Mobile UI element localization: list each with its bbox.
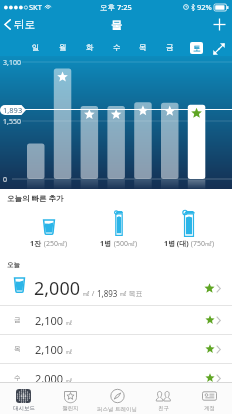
staticText: 친구	[158, 405, 169, 412]
button[interactable]: 금	[0, 306, 232, 334]
staticText: 92%	[197, 2, 212, 12]
staticText: 토	[193, 44, 201, 53]
staticText: 1,550	[3, 117, 21, 127]
staticText: 챌린지	[62, 405, 79, 412]
staticText: 대시보드	[13, 405, 35, 412]
staticText: ㎖ /	[81, 289, 97, 299]
staticText: 오늘의 빠른 추가	[7, 193, 64, 203]
staticText: ㎖	[64, 318, 73, 327]
button[interactable]: 목	[0, 335, 232, 363]
button[interactable]: 목	[136, 41, 149, 53]
button[interactable]: Add	[207, 14, 232, 35]
button[interactable]: 1잔	[23, 210, 75, 250]
staticText: 2,000	[35, 371, 64, 386]
staticText: 오늘	[7, 261, 20, 269]
staticText: 화	[86, 43, 94, 52]
staticText: (250㎖)	[42, 239, 68, 249]
button[interactable]: 퍼스널 트레이닝	[94, 383, 140, 414]
staticText: 계정	[204, 405, 215, 412]
staticText: 1,893	[97, 288, 118, 299]
staticText: 목	[14, 345, 21, 353]
button[interactable]: 금	[163, 41, 176, 53]
staticText: 1잔	[30, 239, 42, 249]
staticText: 수	[14, 374, 21, 382]
staticText: 1병 (대)	[164, 239, 189, 249]
staticText: 오후 7:25	[100, 2, 132, 12]
staticText: 금	[166, 43, 174, 52]
button[interactable]: 친구	[140, 383, 186, 414]
staticText: 1,893	[3, 105, 23, 115]
staticText: 0	[3, 175, 8, 185]
button[interactable]: 챌린지	[47, 383, 94, 414]
button[interactable]: 1병 (대)	[158, 210, 220, 250]
staticText: 월	[59, 43, 67, 52]
staticText: 물	[111, 18, 122, 32]
staticText: (750㎖)	[189, 239, 215, 249]
button[interactable]: 토	[190, 42, 203, 54]
staticText: ㎖	[64, 376, 73, 385]
button[interactable]: 대시보드	[0, 383, 47, 414]
staticText: 2,100	[35, 342, 64, 357]
staticText: 1병	[100, 239, 112, 249]
staticText: 퍼스널 트레이닝	[97, 405, 137, 413]
staticText: ㎖ 목표	[118, 289, 143, 299]
button[interactable]: 계정	[186, 383, 232, 414]
button[interactable]: 뒤로	[0, 15, 41, 34]
button[interactable]: 2,000	[0, 271, 232, 305]
button[interactable]: Expand	[210, 40, 228, 58]
staticText: 3,100	[3, 58, 21, 68]
staticText: 뒤로	[14, 18, 35, 31]
button[interactable]: 월	[56, 41, 69, 53]
staticText: 2,100	[35, 313, 64, 328]
staticText: 일	[32, 43, 40, 52]
button[interactable]: 수	[110, 41, 123, 53]
button[interactable]: 일	[29, 41, 42, 53]
button[interactable]: 화	[83, 41, 96, 53]
button[interactable]: 수	[0, 364, 232, 392]
staticText: 수	[113, 43, 121, 52]
staticText: 2,000	[34, 276, 81, 301]
button[interactable]: 1병	[93, 210, 145, 250]
staticText: 금	[14, 316, 21, 324]
staticText: SKT	[29, 2, 42, 12]
staticText: (500㎖)	[112, 239, 138, 249]
staticText: ㎖	[64, 347, 73, 356]
staticText: 목	[139, 43, 147, 52]
